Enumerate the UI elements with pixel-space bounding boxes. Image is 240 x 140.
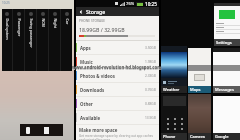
staticText: 10:25 [145, 1, 157, 7]
staticText: Storage [86, 8, 106, 15]
button[interactable]: Phone [161, 94, 187, 140]
button[interactable]: Phone [26, 127, 30, 134]
staticText: Make more space [79, 127, 118, 133]
staticText: www.android-revolution-hd.blogspot.com [72, 64, 162, 70]
button[interactable]: Weather [161, 46, 187, 93]
staticText: 18.99GB / 32.99GB [79, 26, 125, 33]
button[interactable]: Night [49, 9, 60, 71]
button[interactable]: Other [76, 97, 159, 110]
staticText: Night [52, 18, 57, 58]
staticText: Photos & videos [80, 73, 115, 79]
button[interactable]: Messages [213, 48, 240, 93]
staticText: Downloads [80, 87, 105, 93]
staticText: PHONE STORAGE [79, 19, 106, 23]
staticText: Other [80, 101, 93, 107]
button[interactable]: Available [76, 111, 159, 124]
staticText: Dual system [4, 18, 9, 58]
staticText: Camera [190, 134, 205, 139]
button[interactable]: Make more space [76, 127, 159, 140]
button[interactable]: Dual system [2, 9, 12, 71]
button[interactable]: Swing passenger [25, 9, 36, 71]
staticText: 76% [126, 1, 135, 7]
staticText: Apps [80, 45, 91, 51]
staticText: 3.50GB [145, 46, 156, 50]
button[interactable]: Apps [76, 41, 159, 54]
button[interactable]: Downloads [76, 83, 159, 96]
button[interactable]: Music [76, 55, 159, 68]
button[interactable]: Back [76, 7, 159, 16]
button[interactable]: NCM [37, 9, 48, 71]
button[interactable]: Google [213, 96, 240, 140]
staticText: 0.88GB [145, 102, 156, 106]
staticText: Available [80, 115, 101, 121]
button[interactable]: Car [61, 9, 72, 71]
staticText: 0.76GB [145, 88, 156, 92]
button[interactable]: Settings [214, 3, 240, 46]
staticText: Swing passenger [28, 18, 33, 58]
staticText: Messages [215, 87, 234, 92]
staticText: 2.33GB [145, 74, 156, 78]
staticText: 1.98GB [145, 60, 156, 64]
staticText: NCM [40, 18, 45, 58]
staticText: Maps [190, 87, 201, 92]
button[interactable]: Photos & videos [76, 69, 159, 82]
staticText: Phone [163, 134, 176, 139]
staticText: Get more storage space by clearing out a… [79, 134, 155, 140]
button[interactable]: Camera [188, 94, 211, 140]
button[interactable]: Passenger [13, 9, 24, 71]
button[interactable]: Maps [188, 48, 211, 93]
staticText: www.android-revolution-hd.blogspot.com [72, 65, 162, 71]
staticText: 13.9GB [145, 116, 156, 120]
staticText: Settings [216, 40, 232, 45]
staticText: Passenger [16, 18, 21, 58]
staticText: Weather [163, 87, 180, 92]
other: Back [79, 10, 83, 14]
staticText: Google [215, 134, 229, 139]
staticText: 10:25 [2, 1, 10, 5]
staticText: Car [64, 18, 69, 58]
staticText: Music [80, 59, 93, 65]
